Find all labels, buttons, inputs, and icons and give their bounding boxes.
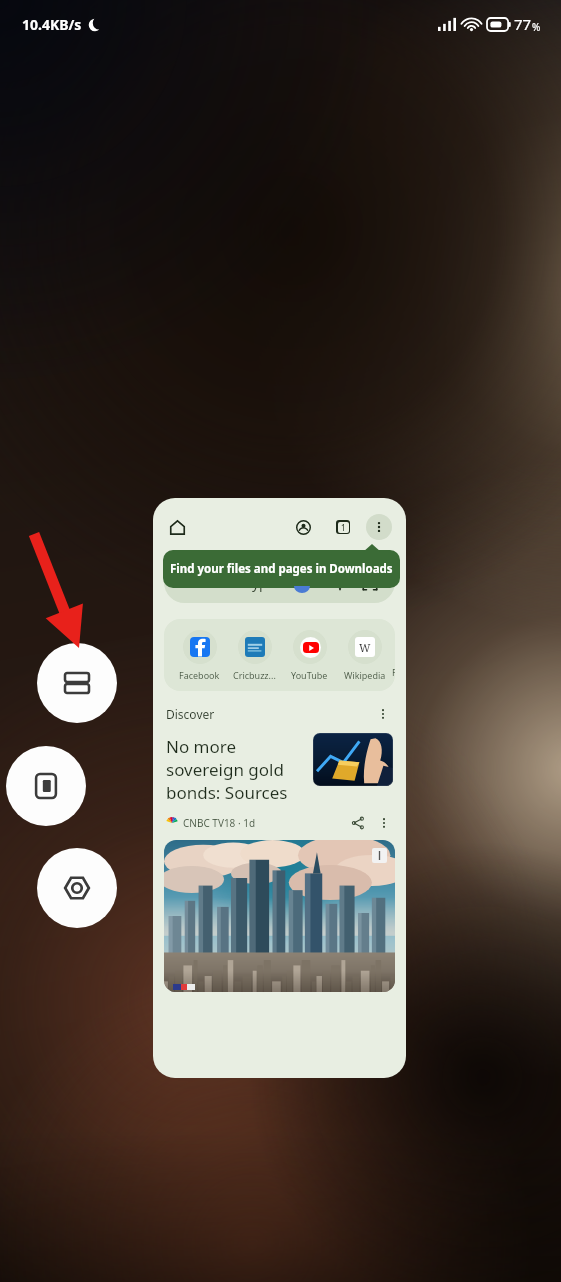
button[interactable]: Home xyxy=(167,517,187,537)
button[interactable]: Tabs xyxy=(332,516,354,538)
staticText: YouTube xyxy=(291,669,328,681)
button[interactable]: Save article xyxy=(372,848,387,863)
button[interactable]: Discover options xyxy=(374,705,392,723)
staticText: sovereign gold xyxy=(166,758,284,781)
staticText: 77 xyxy=(514,14,532,34)
button[interactable]: Article options xyxy=(375,814,393,832)
button[interactable]: Profile xyxy=(292,516,314,538)
staticText: W xyxy=(359,640,371,655)
button[interactable]: YouTube xyxy=(282,630,337,681)
button[interactable]: Home xyxy=(153,498,406,1078)
button[interactable]: Floating window xyxy=(37,848,117,928)
staticText: Find your files and pages in Downloads xyxy=(170,561,393,577)
staticText: Cricbuzz... xyxy=(233,669,276,681)
staticText: 10.4KB/s xyxy=(22,15,82,34)
staticText: % xyxy=(532,20,541,34)
button[interactable]: Save article xyxy=(164,840,395,992)
staticText: 1 xyxy=(341,522,346,533)
staticText: Search or type... xyxy=(181,573,287,592)
staticText: Facebook xyxy=(179,669,220,681)
button[interactable]: Cricbuzz... xyxy=(227,630,282,681)
staticText: F xyxy=(392,666,395,678)
button[interactable]: W xyxy=(337,630,392,681)
staticText: bonds: Sources xyxy=(166,781,288,804)
staticText: No more xyxy=(166,735,237,758)
other: Voice search xyxy=(332,575,348,591)
staticText: Wikipedia xyxy=(344,669,386,681)
button[interactable]: More options xyxy=(366,514,392,540)
staticText: CNBC TV18 · 1d xyxy=(183,816,256,830)
button[interactable]: Split screen xyxy=(37,643,117,723)
button[interactable]: Search or type... xyxy=(164,562,395,603)
button[interactable]: No more xyxy=(153,733,406,832)
button[interactable]: Picture in picture xyxy=(6,746,86,826)
other: Search with Lens xyxy=(362,575,378,591)
button[interactable]: Facebook xyxy=(172,630,227,681)
button[interactable]: Find your files and pages in Downloads xyxy=(163,550,400,588)
button[interactable]: Share xyxy=(349,814,367,832)
staticText: Discover xyxy=(166,706,215,722)
